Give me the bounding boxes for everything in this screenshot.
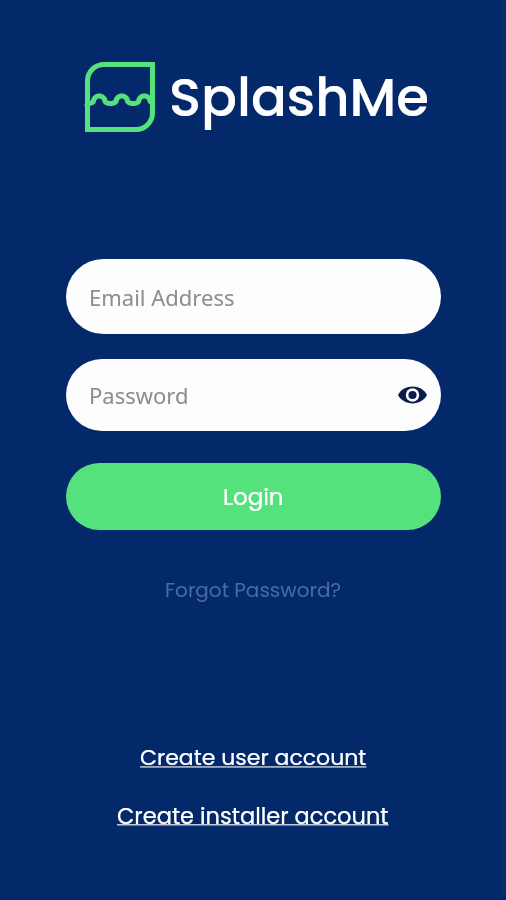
staticText: Create installer account bbox=[117, 800, 389, 831]
staticText: Create user account bbox=[140, 742, 367, 773]
button[interactable]: Forgot Password? bbox=[155, 568, 351, 612]
staticText: Password bbox=[89, 380, 189, 410]
button[interactable]: Password bbox=[66, 359, 441, 431]
staticText: Forgot Password? bbox=[165, 576, 341, 604]
button[interactable]: Show password bbox=[389, 372, 435, 418]
button[interactable]: Email Address bbox=[66, 259, 441, 334]
staticText: Email Address bbox=[89, 282, 235, 312]
button[interactable]: Login bbox=[66, 463, 441, 530]
button[interactable]: Create installer account bbox=[107, 794, 399, 837]
staticText: Login bbox=[223, 481, 284, 513]
button[interactable]: Create user account bbox=[130, 736, 377, 779]
staticText: SplashMe bbox=[169, 60, 430, 134]
